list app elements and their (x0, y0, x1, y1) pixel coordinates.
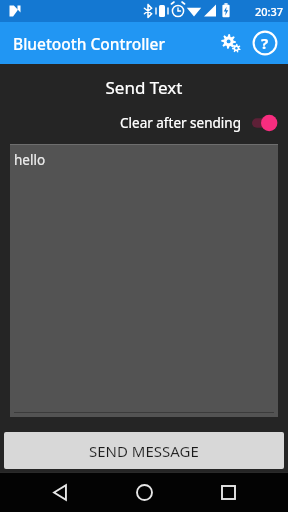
button[interactable]: SEND MESSAGE (4, 432, 284, 469)
staticText: 20:37 (255, 4, 284, 19)
staticText: Send Text (0, 76, 288, 99)
button[interactable]: Clear after sending (120, 112, 278, 134)
staticText: SEND MESSAGE (89, 441, 199, 461)
staticText: Clear after sending (120, 114, 241, 132)
button[interactable]: Back (40, 472, 80, 512)
button[interactable]: Home (124, 472, 164, 512)
button[interactable]: Help (248, 26, 282, 60)
button[interactable]: Settings (214, 26, 248, 60)
staticText: hello (14, 151, 46, 169)
button[interactable]: hello (10, 144, 278, 417)
button[interactable]: Recent apps (208, 472, 248, 512)
button[interactable]: Clear after sending toggle (251, 114, 278, 132)
staticText: ? (261, 33, 269, 53)
staticText: Bluetooth Controller (13, 33, 166, 54)
